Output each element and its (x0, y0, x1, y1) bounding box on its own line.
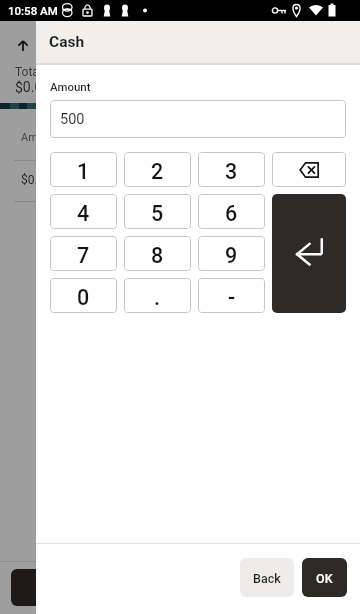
staticText: 8 (151, 243, 164, 268)
staticText: 2 (151, 159, 164, 184)
staticText: 6 (225, 201, 238, 226)
staticText: 10:58 AM (8, 4, 58, 17)
staticText: Amount (21, 131, 60, 144)
button[interactable]: 9 (198, 236, 265, 271)
staticText: Amount (50, 80, 91, 93)
staticText: $0.00 (21, 173, 52, 187)
button[interactable]: 6 (198, 194, 265, 229)
staticText: Total (15, 65, 42, 79)
button[interactable]: 5 (124, 194, 191, 229)
staticText: Cash (49, 33, 85, 51)
staticText: 7 (77, 243, 90, 268)
staticText: 1 (77, 159, 90, 184)
button[interactable]: 8 (124, 236, 191, 271)
staticText: 4 (77, 201, 90, 226)
staticText: 5 (151, 201, 164, 226)
staticText: $0.00 (15, 79, 51, 95)
button[interactable]: - (198, 278, 265, 313)
button[interactable]: Action (11, 569, 71, 606)
button[interactable]: Backspace (272, 152, 346, 187)
button[interactable]: 3 (198, 152, 265, 187)
button[interactable]: Navigate up (11, 34, 35, 58)
button[interactable]: Enter (272, 194, 346, 313)
staticText: 9 (225, 243, 238, 268)
button[interactable]: 0 (50, 278, 117, 313)
button[interactable]: OK (302, 558, 347, 597)
staticText: 500 (60, 111, 85, 128)
button[interactable]: 4 (50, 194, 117, 229)
staticText: - (228, 285, 236, 310)
button[interactable]: 500 (50, 100, 346, 138)
button[interactable]: 1 (50, 152, 117, 187)
staticText: OK (316, 571, 333, 586)
staticText: 3 (225, 159, 238, 184)
button[interactable]: . (124, 278, 191, 313)
button[interactable]: Back (240, 558, 294, 597)
staticText: . (154, 285, 161, 310)
staticText: 0 (77, 285, 90, 310)
button[interactable]: 2 (124, 152, 191, 187)
button[interactable]: 7 (50, 236, 117, 271)
staticText: Back (253, 571, 281, 586)
